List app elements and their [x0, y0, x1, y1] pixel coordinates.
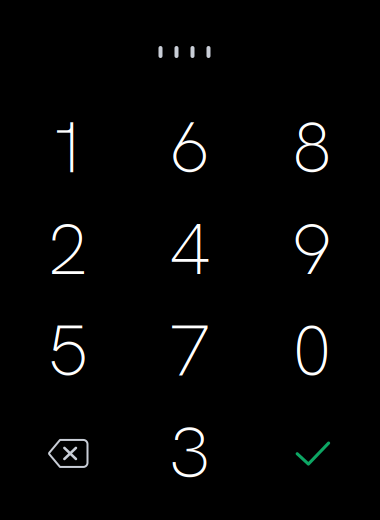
button[interactable]: 9 — [251, 198, 373, 300]
button[interactable]: 0 — [251, 300, 373, 402]
staticText: 4 — [170, 203, 210, 295]
staticText: 0 — [292, 304, 332, 397]
button[interactable]: 6 — [129, 96, 251, 198]
button[interactable]: 3 — [129, 402, 251, 503]
staticText: 8 — [292, 101, 332, 194]
staticText: 9 — [292, 203, 332, 295]
button[interactable]: 4 — [129, 198, 251, 300]
button[interactable]: 2 — [7, 198, 129, 300]
button[interactable]: Delete — [7, 402, 129, 503]
staticText: 5 — [48, 304, 88, 397]
staticText: 1 — [48, 101, 88, 194]
button[interactable]: 5 — [7, 300, 129, 402]
button[interactable]: 8 — [251, 96, 373, 198]
staticText: 2 — [48, 203, 88, 295]
staticText: 3 — [170, 406, 210, 499]
button[interactable]: Confirm — [251, 402, 373, 503]
staticText: 6 — [170, 101, 210, 194]
staticText: 7 — [170, 304, 210, 397]
button[interactable]: 1 — [7, 96, 129, 198]
button[interactable]: 7 — [129, 300, 251, 402]
